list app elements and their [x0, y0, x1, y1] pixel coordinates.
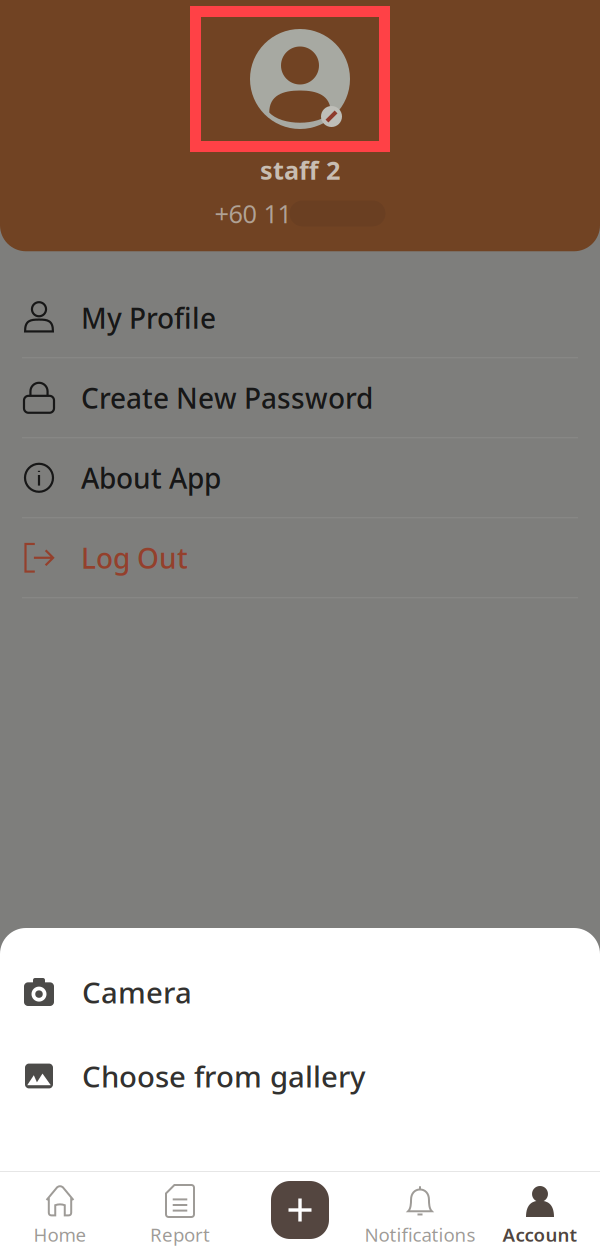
staticText: Notifications — [364, 1222, 475, 1247]
button[interactable]: Account — [480, 1171, 600, 1258]
staticText: About App — [81, 459, 221, 496]
staticText: Camera — [82, 972, 192, 1011]
staticText: Report — [150, 1222, 210, 1247]
staticText: Account — [502, 1222, 577, 1247]
button[interactable]: Log Out — [0, 518, 600, 598]
button[interactable]: Add — [240, 1171, 360, 1258]
button[interactable]: Notifications — [360, 1171, 480, 1258]
button[interactable]: Create New Password — [0, 358, 600, 438]
staticText: My Profile — [81, 299, 216, 336]
staticText: Create New Password — [81, 379, 373, 416]
button[interactable]: Home — [0, 1171, 120, 1258]
button[interactable]: Report — [120, 1171, 240, 1258]
staticText: staff 2 — [260, 153, 340, 187]
staticText: Log Out — [81, 539, 188, 576]
button[interactable]: Camera — [0, 950, 600, 1034]
staticText: Choose from gallery — [82, 1056, 365, 1095]
button[interactable]: About App — [0, 438, 600, 518]
button[interactable]: My Profile — [0, 278, 600, 358]
staticText: +60 110 — [214, 197, 305, 230]
staticText: Home — [33, 1222, 86, 1247]
button[interactable]: Choose from gallery — [0, 1034, 600, 1118]
